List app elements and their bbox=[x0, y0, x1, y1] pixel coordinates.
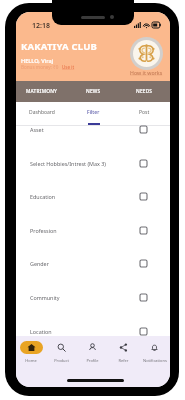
staticText: Asset bbox=[30, 126, 44, 133]
button[interactable]: Asset bbox=[16, 125, 170, 159]
staticText: Home bbox=[25, 358, 37, 363]
staticText: Filter bbox=[87, 109, 100, 116]
button[interactable]: Club logo bbox=[130, 37, 163, 70]
staticText: 12:18 bbox=[32, 21, 50, 31]
button[interactable]: NEEDS bbox=[119, 81, 170, 102]
staticText: Refer bbox=[118, 358, 129, 363]
staticText: Select Hobbies/Intrest (Max 3) bbox=[30, 160, 106, 167]
button[interactable]: Education bbox=[16, 192, 170, 226]
staticText: NEWS bbox=[86, 88, 101, 95]
button[interactable]: Post bbox=[119, 102, 170, 125]
staticText: Location bbox=[30, 328, 52, 335]
staticText: Post bbox=[139, 109, 150, 116]
button[interactable]: Select Hobbies/Intrest (Max 3) bbox=[16, 159, 170, 193]
button[interactable]: Community bbox=[16, 293, 170, 327]
button[interactable]: Notifications bbox=[139, 341, 170, 365]
staticText: KAKATIYA CLUB bbox=[21, 40, 98, 53]
staticText: Product bbox=[54, 358, 69, 363]
button[interactable]: How it works bbox=[130, 69, 163, 76]
staticText: NEEDS bbox=[136, 88, 153, 95]
staticText: HELLO, Viraj bbox=[21, 57, 54, 65]
button[interactable]: Profile bbox=[77, 341, 108, 365]
button[interactable]: Location bbox=[16, 327, 170, 361]
button[interactable]: Gender bbox=[16, 259, 170, 293]
button[interactable]: Dashboard bbox=[16, 102, 68, 125]
button[interactable]: Filter bbox=[68, 102, 119, 125]
staticText: Education bbox=[30, 193, 56, 200]
button[interactable]: Home bbox=[16, 341, 46, 365]
staticText: Profession bbox=[30, 227, 57, 234]
button[interactable]: Use it bbox=[62, 64, 75, 70]
staticText: MATRIMONY bbox=[26, 88, 58, 95]
staticText: Bonus money: ₹0 bbox=[21, 64, 59, 70]
staticText: Community bbox=[30, 294, 60, 301]
button[interactable]: MATRIMONY bbox=[16, 81, 68, 102]
button[interactable]: Refer bbox=[108, 341, 139, 365]
button[interactable]: Profession bbox=[16, 226, 170, 260]
staticText: Notifications bbox=[143, 358, 167, 363]
button[interactable]: NEWS bbox=[68, 81, 119, 102]
staticText: Gender bbox=[30, 260, 49, 267]
button[interactable]: Product bbox=[46, 341, 77, 365]
staticText: Profile bbox=[86, 358, 99, 363]
staticText: Dashboard bbox=[29, 109, 55, 116]
